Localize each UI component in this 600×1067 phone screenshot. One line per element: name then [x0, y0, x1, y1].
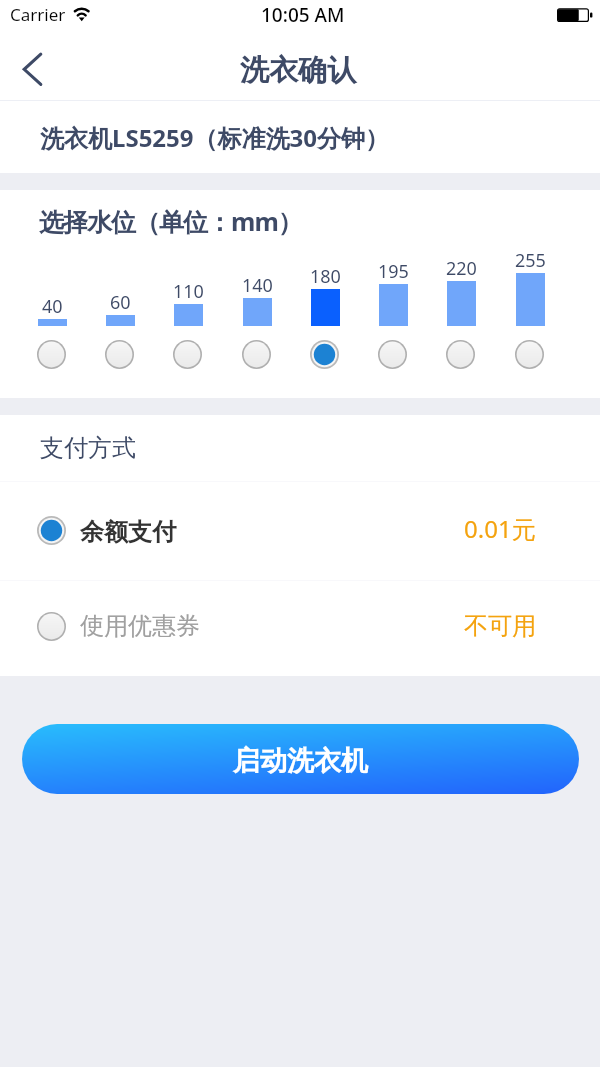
button[interactable]: 水位 180 mm — [291, 234, 359, 389]
button[interactable]: 余额支付 — [0, 482, 600, 580]
staticText: 180 — [310, 264, 341, 289]
staticText: 110 — [173, 279, 204, 304]
staticText: Carrier — [10, 3, 66, 26]
button[interactable]: 启动洗衣机 — [22, 724, 579, 794]
button[interactable]: Back — [10, 46, 58, 94]
staticText: 220 — [446, 256, 477, 281]
staticText: 余额支付 — [80, 517, 176, 547]
button[interactable]: 水位 110 mm — [154, 234, 222, 389]
staticText: 255 — [515, 248, 546, 273]
staticText: 10:05 AM — [261, 2, 345, 28]
staticText: 使用优惠券 — [80, 611, 200, 641]
button[interactable]: 水位 220 mm — [427, 234, 495, 389]
staticText: 0.01元 — [464, 512, 536, 545]
staticText: 洗衣机LS5259（标准洗30分钟） — [40, 121, 390, 154]
staticText: 140 — [242, 273, 273, 298]
button[interactable]: 水位 40 mm — [18, 234, 86, 389]
staticText: 40 — [42, 294, 63, 319]
staticText: 洗衣确认 — [240, 52, 356, 89]
staticText: 选择水位（单位：mm） — [39, 204, 302, 238]
button[interactable]: 水位 60 mm — [86, 234, 154, 389]
button[interactable]: 水位 255 mm — [496, 234, 564, 389]
staticText: 不可用 — [464, 611, 536, 641]
button[interactable]: 使用优惠券 — [0, 581, 600, 676]
staticText: 195 — [378, 259, 409, 284]
staticText: 60 — [110, 290, 131, 315]
button[interactable]: 水位 140 mm — [223, 234, 291, 389]
button[interactable]: 水位 195 mm — [359, 234, 427, 389]
staticText: 启动洗衣机 — [233, 744, 368, 778]
staticText: 支付方式 — [40, 433, 136, 463]
